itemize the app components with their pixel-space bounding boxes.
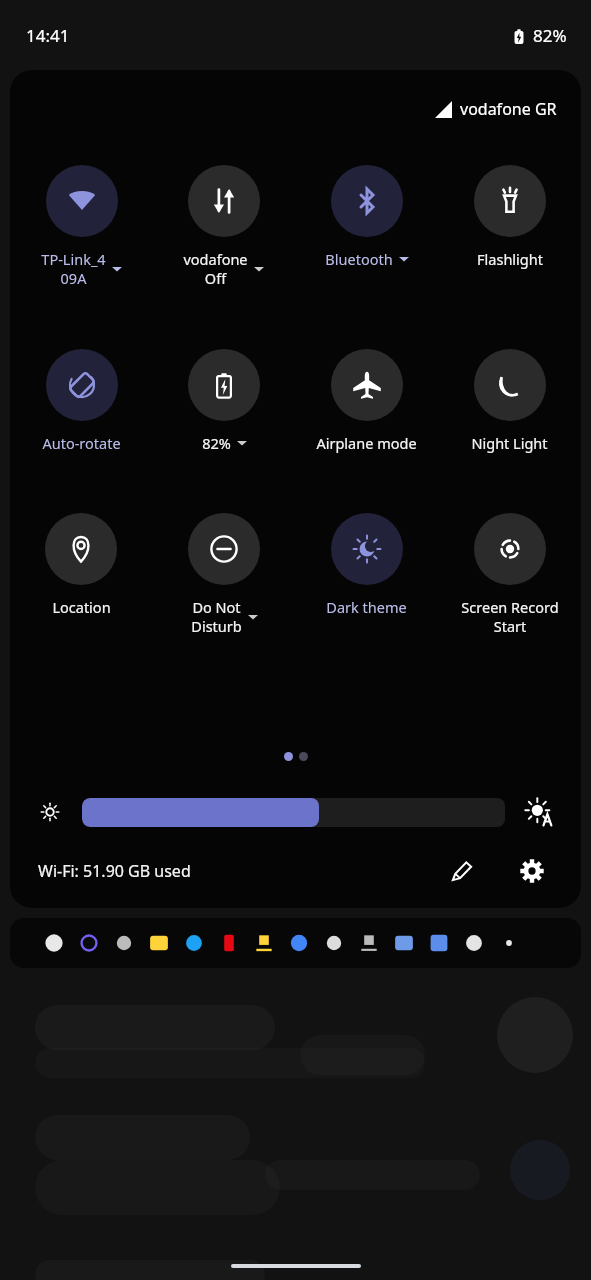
staticText: vodafone GR	[460, 98, 557, 120]
button[interactable]: Airplane mode	[316, 349, 417, 453]
button[interactable]: App 1	[77, 931, 101, 955]
button[interactable]: App 0	[42, 931, 66, 955]
button[interactable]: vodafone Off	[183, 165, 264, 289]
staticText: vodafone Off	[183, 249, 248, 289]
button[interactable]: App 3	[147, 931, 171, 955]
button[interactable]: 82%	[188, 349, 260, 453]
staticText: Auto-rotate	[42, 433, 121, 453]
staticText: Location	[52, 597, 111, 617]
staticText: Night Light	[471, 433, 548, 453]
button[interactable]: Location	[45, 513, 117, 617]
button[interactable]	[82, 798, 505, 827]
button[interactable]: TP-Link_4 09A	[41, 165, 122, 289]
staticText: TP-Link_4 09A	[41, 249, 106, 289]
staticText: Flashlight	[477, 249, 543, 269]
button[interactable]: Bluetooth	[325, 165, 409, 269]
button[interactable]: App 10	[392, 931, 416, 955]
button[interactable]: App 9	[357, 931, 381, 955]
button[interactable]: Night Light	[471, 349, 548, 453]
button[interactable]: App 7	[287, 931, 311, 955]
button[interactable]: App 2	[112, 931, 136, 955]
button[interactable]: App 12	[462, 931, 486, 955]
button[interactable]: Flashlight	[474, 165, 546, 269]
button[interactable]: App 4	[182, 931, 206, 955]
button[interactable]: Edit tiles	[441, 850, 483, 892]
button[interactable]: Do Not Disturb	[188, 513, 260, 637]
button[interactable]: Auto-rotate	[42, 349, 121, 453]
staticText: Wi-Fi: 51.90 GB used	[38, 860, 191, 882]
staticText: 82%	[202, 433, 231, 453]
staticText: Do Not Disturb	[191, 597, 242, 637]
button[interactable]: Screen Record Start	[461, 513, 559, 637]
staticText: Airplane mode	[316, 433, 417, 453]
button[interactable]: App 11	[427, 931, 451, 955]
staticText: 14:41	[26, 24, 70, 47]
button[interactable]: App 5	[217, 931, 241, 955]
button[interactable]: App 8	[322, 931, 346, 955]
button[interactable]: Auto brightness	[519, 792, 559, 832]
button[interactable]: Lower brightness	[32, 794, 68, 830]
staticText: Dark theme	[326, 597, 407, 617]
button[interactable]: App 6	[252, 931, 276, 955]
button[interactable]: Dark theme	[326, 513, 407, 617]
button[interactable]: App 13	[497, 931, 521, 955]
staticText: 82%	[533, 24, 567, 47]
staticText: Screen Record Start	[461, 597, 559, 637]
staticText: Bluetooth	[325, 249, 393, 269]
button[interactable]: Settings	[511, 850, 553, 892]
